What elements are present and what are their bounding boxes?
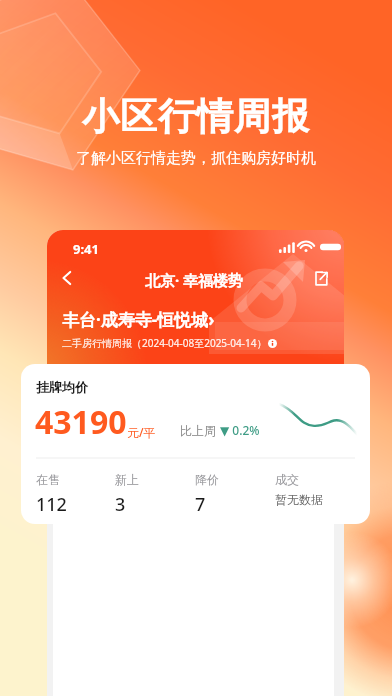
staticText: 挂牌均价: [36, 379, 88, 395]
staticText: 在售: [36, 472, 60, 487]
button[interactable]: 成交: [275, 472, 355, 507]
staticText: 北京· 幸福楼势: [145, 270, 244, 290]
button[interactable]: 新上: [115, 472, 195, 517]
staticText: 3: [115, 492, 126, 517]
staticText: ▼ 0.2%: [220, 422, 260, 438]
staticText: 112: [36, 492, 67, 517]
staticText: 二手房行情周报（2024-04-08至2025-04-14）: [62, 336, 267, 350]
staticText: 小区行情周报: [0, 93, 392, 140]
staticText: 降价: [195, 472, 219, 487]
staticText: 9:41: [73, 240, 99, 258]
staticText: 新上: [115, 472, 139, 487]
button[interactable]: 降价: [195, 472, 275, 517]
button[interactable]: Back: [51, 262, 83, 294]
staticText: 了解小区行情走势，抓住购房好时机: [0, 149, 392, 168]
staticText: 暂无数据: [275, 492, 323, 507]
staticText: 7: [195, 492, 206, 517]
staticText: 43190: [35, 400, 127, 444]
staticText: 元/平: [127, 424, 156, 440]
staticText: 比上周: [180, 422, 220, 438]
button[interactable]: 在售: [36, 472, 115, 517]
staticText: 成交: [275, 472, 299, 487]
staticText: 丰台·成寿寺-恒悦城›: [62, 308, 215, 331]
button[interactable]: Share: [305, 263, 335, 293]
